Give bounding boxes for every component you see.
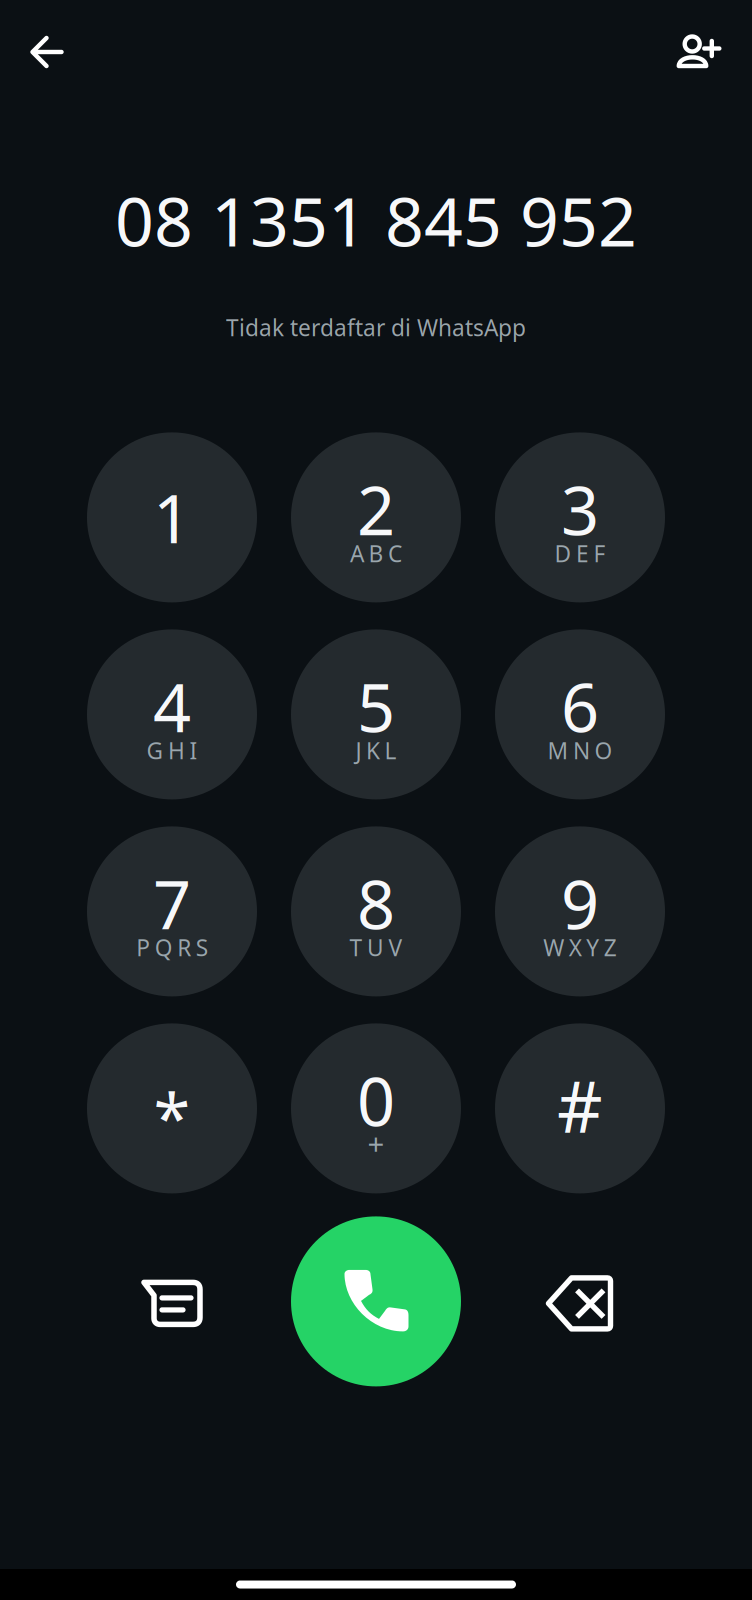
staticText: WXYZ (543, 932, 617, 962)
staticText: 2 (357, 465, 395, 554)
staticText: MNO (547, 735, 612, 765)
staticText: TUV (349, 932, 402, 962)
staticText: # (557, 1058, 603, 1152)
staticText: DEF (554, 538, 605, 568)
staticText: 08 1351 845 952 (115, 175, 637, 265)
button[interactable]: Back (8, 13, 86, 91)
button[interactable]: 1 (87, 432, 257, 602)
staticText: 0 (357, 1056, 395, 1145)
staticText: 5 (357, 662, 395, 751)
button[interactable]: Delete (495, 1216, 665, 1386)
staticText: 7 (153, 859, 191, 948)
button[interactable]: # (495, 1023, 665, 1193)
staticText: 8 (357, 859, 395, 948)
staticText: * (153, 1073, 190, 1162)
staticText: 9 (561, 859, 599, 948)
staticText: 4 (153, 662, 191, 751)
button[interactable]: 8 (291, 826, 461, 996)
staticText: PQRS (136, 932, 208, 962)
button[interactable]: 0 (291, 1023, 461, 1193)
button[interactable]: 9 (495, 826, 665, 996)
button[interactable]: 6 (495, 629, 665, 799)
staticText: JKL (355, 735, 396, 765)
staticText: + (367, 1124, 384, 1163)
staticText: Tidak terdaftar di WhatsApp (226, 312, 526, 342)
staticText: 3 (561, 465, 599, 554)
staticText: 1 (153, 473, 191, 562)
button[interactable]: 4 (87, 629, 257, 799)
staticText: GHI (146, 735, 197, 765)
button[interactable]: 5 (291, 629, 461, 799)
button[interactable]: 2 (291, 432, 461, 602)
button[interactable]: Send message (87, 1216, 257, 1386)
staticText: 6 (561, 662, 599, 751)
button[interactable]: Add contact (659, 13, 737, 91)
button[interactable]: 3 (495, 432, 665, 602)
button[interactable]: Call (291, 1216, 461, 1386)
button[interactable]: 7 (87, 826, 257, 996)
staticText: ABC (350, 538, 402, 568)
button[interactable]: * (87, 1023, 257, 1193)
